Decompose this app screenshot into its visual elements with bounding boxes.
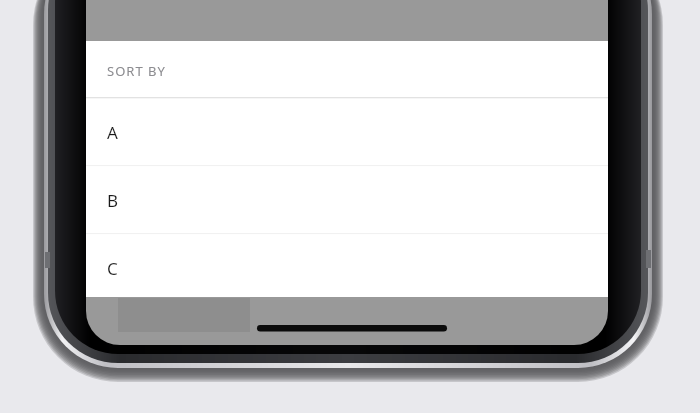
button[interactable]: C bbox=[86, 234, 608, 302]
button[interactable]: B bbox=[86, 166, 608, 234]
staticText: SORT BY bbox=[107, 62, 166, 80]
staticText: A bbox=[107, 121, 118, 144]
button[interactable]: SORT BY bbox=[86, 41, 608, 98]
staticText: C bbox=[107, 257, 118, 280]
button[interactable]: A bbox=[86, 98, 608, 166]
staticText: B bbox=[107, 189, 119, 212]
